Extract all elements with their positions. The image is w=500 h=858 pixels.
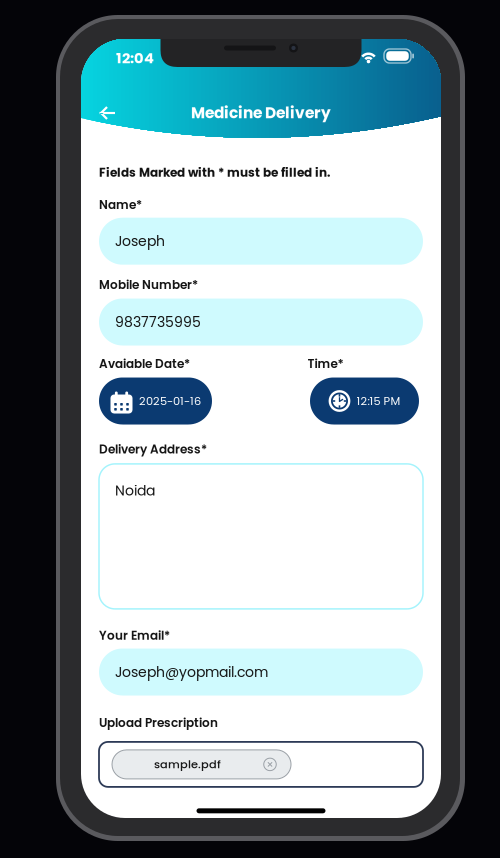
- staticText: 9837735995: [115, 312, 201, 332]
- staticText: Delivery Address*: [99, 441, 207, 458]
- staticText: Joseph: [115, 231, 165, 251]
- staticText: Avaiable Date*: [99, 355, 190, 372]
- button[interactable]: Back: [89, 96, 125, 130]
- staticText: Joseph@yopmail.com: [115, 662, 268, 682]
- button[interactable]: 12:15 PM: [310, 377, 419, 424]
- button[interactable]: sample.pdf: [112, 750, 291, 779]
- staticText: Fields Marked with * must be filled in.: [99, 164, 330, 181]
- staticText: Name*: [99, 196, 142, 213]
- staticText: 12:15 PM: [356, 393, 400, 409]
- staticText: 2025-01-16: [139, 393, 201, 409]
- staticText: 12:04: [116, 48, 154, 68]
- staticText: Noida: [115, 481, 155, 500]
- staticText: Mobile Number*: [99, 276, 198, 293]
- staticText: Time*: [307, 355, 343, 372]
- staticText: sample.pdf: [154, 756, 221, 772]
- staticText: Medicine Delivery: [191, 102, 331, 124]
- staticText: Upload Prescription: [99, 714, 218, 731]
- button[interactable]: 2025-01-16: [99, 377, 212, 424]
- staticText: Your Email*: [99, 627, 170, 644]
